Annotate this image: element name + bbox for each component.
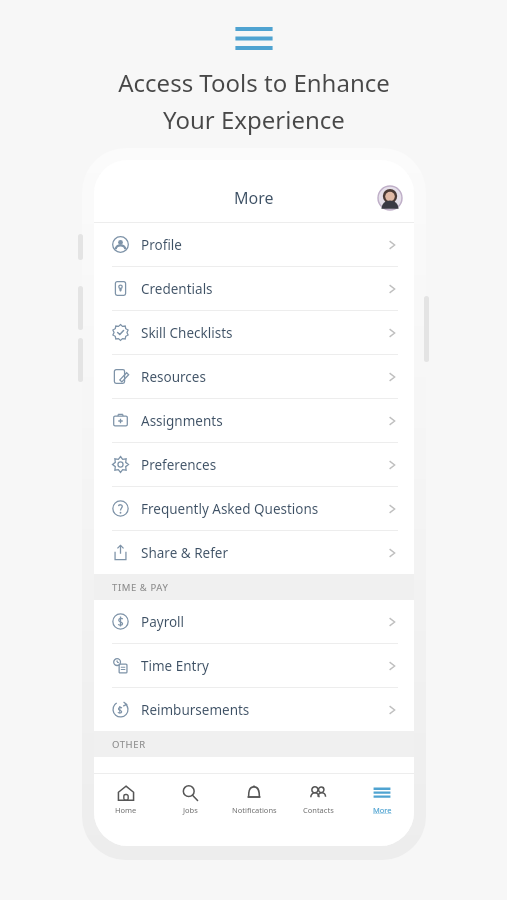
button[interactable]: Jobs — [158, 780, 222, 815]
staticText: Reimbursements — [141, 701, 250, 719]
staticText: Frequently Asked Questions — [141, 500, 319, 518]
button[interactable]: Contacts — [286, 780, 350, 815]
staticText: More — [373, 805, 392, 815]
staticText: Credentials — [141, 280, 213, 298]
button[interactable]: Home — [94, 780, 158, 815]
button[interactable]: Skill Checklists — [94, 311, 414, 354]
button[interactable]: Resources — [94, 355, 414, 398]
staticText: OTHER — [112, 738, 146, 751]
staticText: Access Tools to Enhance — [118, 66, 390, 99]
staticText: Notifications — [232, 805, 277, 815]
staticText: Jobs — [183, 805, 198, 815]
button[interactable]: Profile — [94, 223, 414, 266]
staticText: Skill Checklists — [141, 324, 233, 342]
staticText: More — [234, 187, 274, 209]
staticText: Preferences — [141, 456, 217, 474]
staticText: TIME & PAY — [112, 581, 169, 594]
button[interactable]: More — [350, 780, 414, 815]
staticText: Payroll — [141, 613, 185, 631]
staticText: Contacts — [303, 805, 334, 815]
button[interactable]: Profile photo — [378, 186, 402, 210]
staticText: Home — [115, 805, 137, 815]
button[interactable]: Time Entry — [94, 644, 414, 687]
button[interactable]: Frequently Asked Questions — [94, 487, 414, 530]
button[interactable]: Share & Refer — [94, 531, 414, 574]
staticText: Your Experience — [163, 103, 345, 136]
button[interactable]: Notifications — [222, 780, 286, 815]
staticText: Profile — [141, 236, 182, 254]
staticText: Resources — [141, 368, 206, 386]
button[interactable]: Menu — [225, 20, 283, 56]
button[interactable]: Credentials — [94, 267, 414, 310]
staticText: Share & Refer — [141, 544, 228, 562]
staticText: Time Entry — [141, 657, 209, 675]
button[interactable]: Assignments — [94, 399, 414, 442]
button[interactable]: Reimbursements — [94, 688, 414, 731]
button[interactable]: Preferences — [94, 443, 414, 486]
button[interactable]: Payroll — [94, 600, 414, 643]
staticText: Assignments — [141, 412, 223, 430]
